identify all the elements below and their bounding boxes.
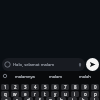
button[interactable]: 2 [11, 84, 19, 90]
button[interactable]: 1 [1, 84, 9, 90]
button[interactable]: 3 [21, 84, 29, 90]
other: Emoji [4, 61, 11, 68]
button[interactable]: i [71, 91, 79, 97]
button[interactable]: malamnya [10, 71, 40, 81]
button[interactable]: o [81, 91, 89, 97]
staticText: q [4, 91, 7, 97]
button[interactable]: malah [70, 71, 100, 81]
button[interactable]: d [24, 97, 33, 100]
staticText: o [84, 91, 87, 97]
button[interactable]: 0 [91, 84, 99, 90]
button[interactable]: a [1, 97, 11, 100]
button[interactable]: 7 [61, 84, 69, 90]
button[interactable]: j [68, 97, 77, 100]
button[interactable]: r [31, 91, 39, 97]
button[interactable]: f [35, 97, 44, 100]
button[interactable]: p [91, 91, 99, 97]
staticText: f [39, 97, 41, 100]
staticText: l [94, 97, 96, 100]
button[interactable]: h [57, 97, 66, 100]
staticText: 3 [24, 84, 27, 90]
button[interactable]: 4 [31, 84, 39, 90]
staticText: malamnya [15, 74, 35, 79]
button[interactable]: u [61, 91, 69, 97]
button[interactable]: g [46, 97, 55, 100]
staticText: Halo, selamat malam [13, 62, 55, 68]
staticText: g [49, 97, 52, 100]
staticText: t [44, 91, 46, 97]
staticText: j [72, 97, 74, 100]
staticText: r [34, 91, 36, 97]
staticText: 7 [64, 84, 67, 90]
staticText: 4 [34, 84, 37, 90]
button[interactable]: Emoji [2, 58, 85, 71]
staticText: malam [49, 74, 62, 79]
staticText: u [64, 91, 67, 97]
button[interactable]: 5 [41, 84, 49, 90]
button[interactable]: w [11, 91, 19, 97]
button[interactable]: 6 [51, 84, 59, 90]
button[interactable]: l [90, 97, 99, 100]
staticText: 9 [84, 84, 87, 90]
staticText: 8 [74, 84, 77, 90]
staticText: 0 [94, 84, 97, 90]
button[interactable]: Send [86, 58, 99, 71]
staticText: 6 [54, 84, 57, 90]
button[interactable]: malam [40, 71, 70, 81]
staticText: d [27, 97, 30, 100]
staticText: 1 [4, 84, 7, 90]
staticText: h [60, 97, 63, 100]
other: Voice message [77, 62, 83, 68]
button[interactable]: q [1, 91, 9, 97]
button[interactable]: k [79, 97, 88, 100]
staticText: p [94, 91, 97, 97]
staticText: e [24, 91, 27, 97]
staticText: 5 [44, 84, 47, 90]
staticText: w [13, 91, 17, 97]
button[interactable]: t [41, 91, 49, 97]
staticText: i [74, 91, 76, 97]
staticText: k [82, 97, 85, 100]
staticText: s [16, 97, 19, 100]
button[interactable]: Google [0, 71, 10, 81]
staticText: malah [79, 74, 91, 79]
button[interactable]: e [21, 91, 29, 97]
button[interactable]: 8 [71, 84, 79, 90]
button[interactable]: 9 [81, 84, 89, 90]
staticText: y [54, 91, 57, 97]
staticText: 2 [14, 84, 17, 90]
button[interactable]: s [13, 97, 22, 100]
button[interactable]: y [51, 91, 59, 97]
staticText: a [5, 97, 8, 100]
